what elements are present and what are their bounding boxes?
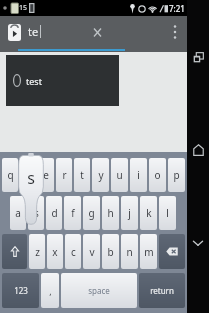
button[interactable]: f bbox=[64, 196, 81, 230]
staticText: n bbox=[126, 245, 133, 259]
staticText: u bbox=[116, 168, 123, 182]
staticText: return bbox=[150, 285, 174, 296]
button[interactable]: i bbox=[130, 158, 147, 192]
staticText: l bbox=[166, 206, 169, 220]
button[interactable]: Shift bbox=[2, 234, 27, 269]
staticText: f bbox=[71, 206, 75, 220]
button[interactable]: g bbox=[83, 196, 100, 230]
button[interactable]: return bbox=[139, 273, 185, 308]
button[interactable]: h bbox=[102, 196, 119, 230]
staticText: , bbox=[49, 285, 52, 297]
staticText: 7:21 bbox=[169, 3, 185, 14]
button[interactable]: l bbox=[159, 196, 176, 230]
button[interactable]: More options bbox=[166, 18, 184, 46]
staticText: b bbox=[107, 245, 114, 259]
button[interactable]: , bbox=[41, 273, 59, 308]
staticText: i bbox=[137, 168, 140, 182]
staticText: s bbox=[27, 167, 35, 189]
button[interactable]: x bbox=[47, 234, 63, 269]
staticText: space bbox=[88, 285, 110, 296]
staticText: x bbox=[52, 245, 58, 259]
button[interactable]: m bbox=[140, 234, 157, 269]
button[interactable]: test bbox=[6, 55, 119, 106]
staticText: o bbox=[154, 168, 161, 182]
button[interactable]: a bbox=[10, 196, 26, 230]
staticText: z bbox=[35, 245, 40, 259]
staticText: c bbox=[71, 245, 76, 259]
button[interactable]: p bbox=[168, 158, 185, 192]
button[interactable]: z bbox=[29, 234, 45, 269]
staticText: p bbox=[173, 168, 180, 182]
button[interactable]: Home bbox=[187, 139, 209, 161]
staticText: m bbox=[144, 245, 154, 259]
staticText: e bbox=[43, 168, 49, 182]
staticText: q bbox=[7, 168, 14, 182]
button[interactable]: v bbox=[83, 234, 100, 269]
staticText: s bbox=[34, 206, 39, 220]
staticText: v bbox=[89, 245, 95, 259]
staticText: w bbox=[24, 168, 32, 182]
button[interactable]: q bbox=[2, 158, 18, 192]
staticText: 123 bbox=[14, 285, 28, 296]
staticText: y bbox=[98, 168, 104, 182]
staticText: d bbox=[51, 206, 58, 220]
button[interactable]: b bbox=[102, 234, 119, 269]
button[interactable]: Backspace bbox=[159, 234, 185, 269]
staticText: r bbox=[62, 168, 67, 182]
button[interactable]: r bbox=[56, 158, 72, 192]
button[interactable]: e bbox=[38, 158, 54, 192]
button[interactable]: 123 bbox=[2, 273, 39, 308]
button[interactable]: y bbox=[92, 158, 109, 192]
button[interactable]: o bbox=[149, 158, 166, 192]
button[interactable]: u bbox=[111, 158, 128, 192]
staticText: h bbox=[107, 206, 114, 220]
button[interactable]: Clear bbox=[85, 20, 109, 44]
button[interactable]: w bbox=[20, 158, 36, 192]
button[interactable]: App bbox=[3, 21, 25, 43]
button[interactable]: s bbox=[28, 196, 44, 230]
button[interactable]: d bbox=[46, 196, 62, 230]
button[interactable]: Back bbox=[187, 232, 209, 254]
button[interactable]: k bbox=[140, 196, 157, 230]
staticText: j bbox=[128, 206, 131, 220]
button[interactable]: Recents bbox=[187, 46, 209, 68]
staticText: te bbox=[28, 24, 39, 39]
button[interactable]: space bbox=[61, 273, 137, 308]
staticText: g bbox=[88, 206, 95, 220]
staticText: 15 bbox=[19, 3, 28, 13]
staticText: k bbox=[146, 206, 152, 220]
staticText: test bbox=[26, 75, 42, 87]
staticText: t bbox=[80, 168, 84, 182]
button[interactable]: t bbox=[74, 158, 90, 192]
button[interactable]: j bbox=[121, 196, 138, 230]
button[interactable]: c bbox=[65, 234, 81, 269]
button[interactable]: n bbox=[121, 234, 138, 269]
staticText: a bbox=[15, 206, 21, 220]
